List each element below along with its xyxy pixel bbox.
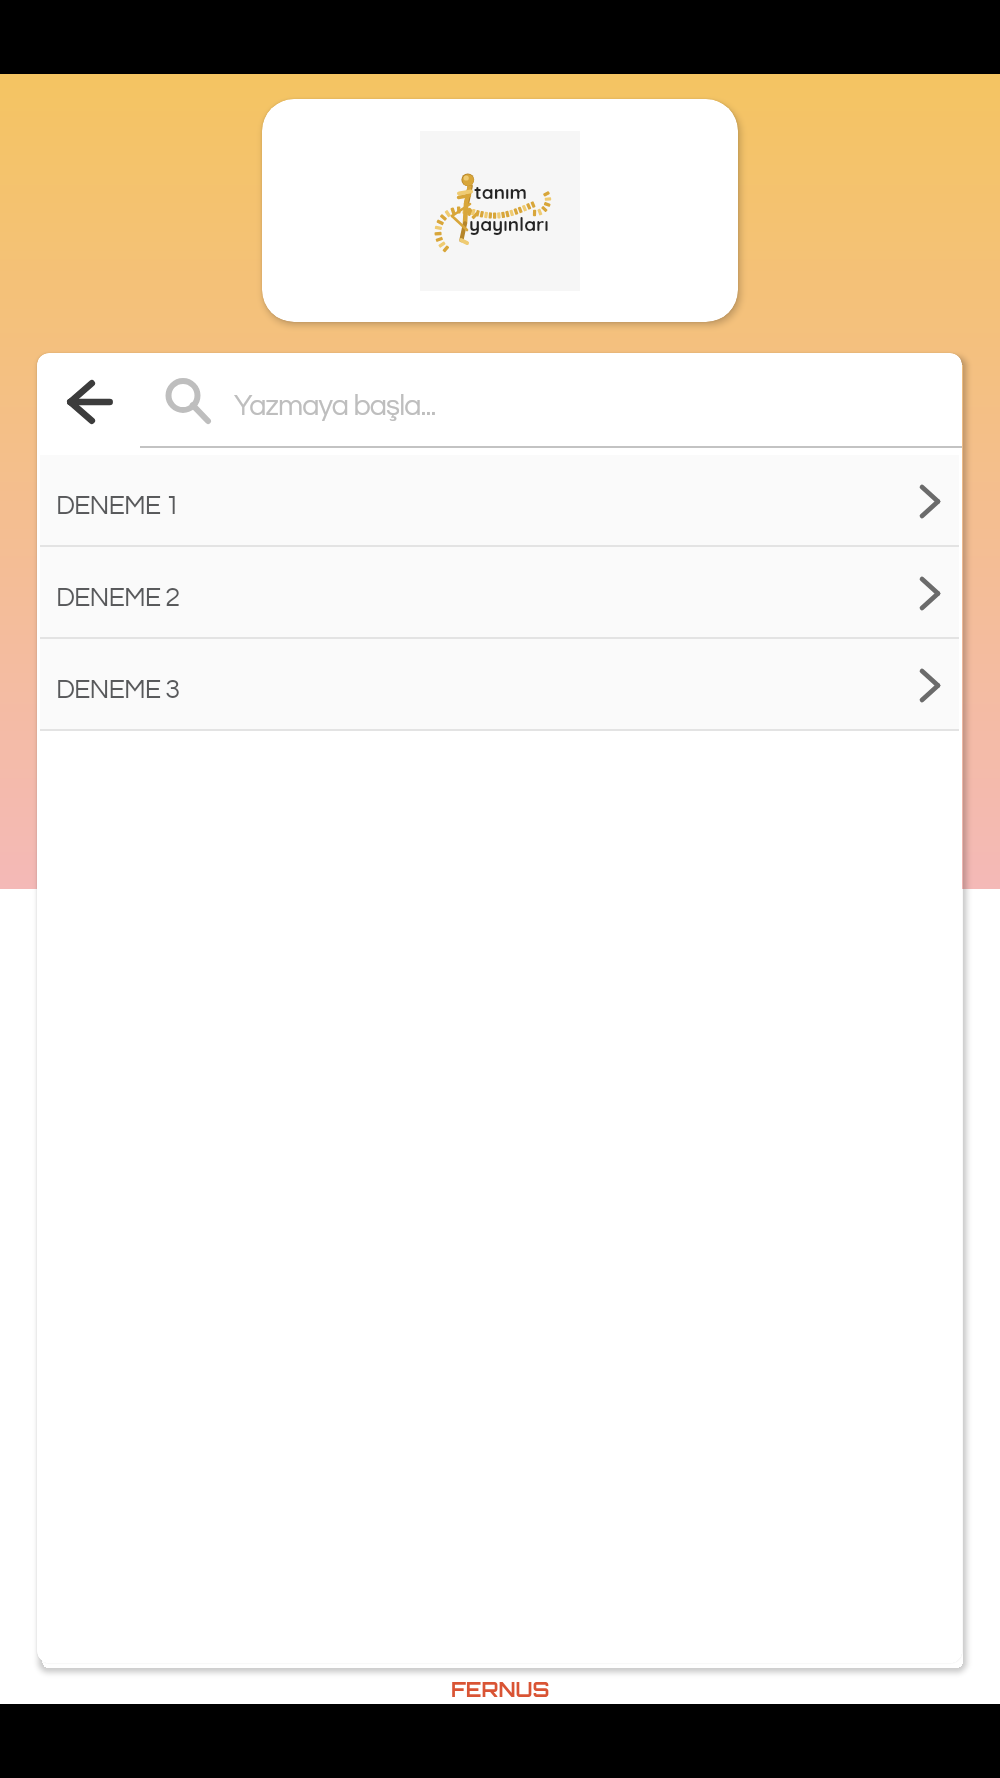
staticText: Yazmaya başla... [234,391,436,421]
staticText: yayınları [469,212,549,236]
staticText: FERNUS [451,1676,550,1702]
button[interactable]: DENEME 2 [40,547,959,637]
staticText: DENEME 3 [56,676,180,704]
button[interactable]: Tanım Yayınları logo [262,99,738,322]
staticText: tanım [474,180,528,204]
button[interactable]: Yazmaya başla... [140,361,962,448]
button[interactable]: DENEME 3 [40,639,959,729]
button[interactable]: DENEME 1 [40,455,959,545]
staticText: DENEME 1 [56,492,180,520]
button[interactable]: Back [51,363,129,441]
staticText: DENEME 2 [56,584,180,612]
